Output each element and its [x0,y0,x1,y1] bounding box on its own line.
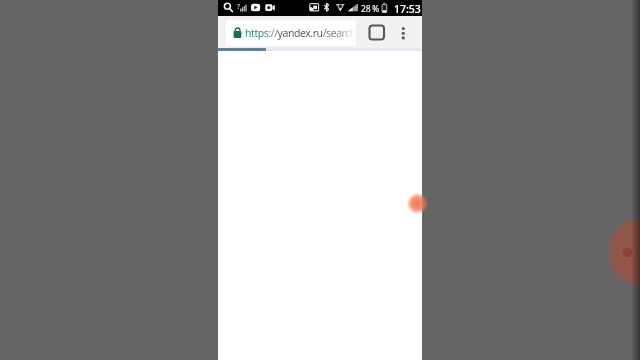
staticText: 28 % [361,3,380,15]
button[interactable]: https://yandex.ru/search [226,20,356,46]
button[interactable] [394,19,414,46]
staticText: https://yandex.ru/search [245,26,356,40]
button[interactable] [362,19,390,46]
staticText: 17:53 [394,2,421,16]
staticText: ? [237,2,240,11]
